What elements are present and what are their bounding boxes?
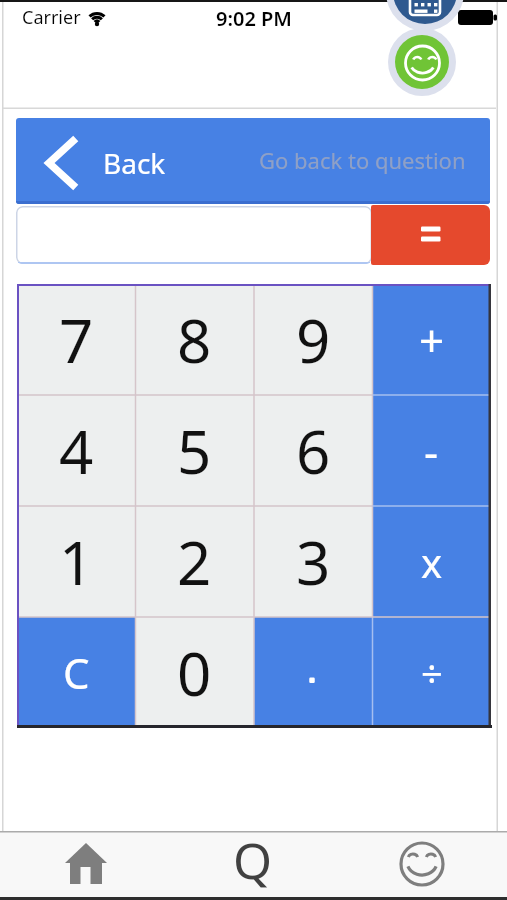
- button[interactable]: C: [17, 617, 136, 728]
- button[interactable]: [16, 206, 372, 264]
- staticText: 4: [59, 410, 94, 492]
- button[interactable]: 0: [135, 617, 254, 728]
- button[interactable]: 1: [17, 506, 136, 617]
- staticText: 8: [177, 299, 212, 381]
- staticText: 9:02 PM: [216, 5, 292, 31]
- staticText: 7: [59, 299, 94, 381]
- button[interactable]: ÷: [372, 617, 491, 728]
- button[interactable]: 9: [254, 284, 373, 395]
- staticText: 9: [296, 299, 331, 381]
- staticText: 3: [296, 521, 331, 603]
- button[interactable]: [388, 28, 456, 96]
- button[interactable]: [254, 617, 373, 728]
- staticText: 0: [177, 632, 212, 714]
- button[interactable]: 6: [254, 395, 373, 506]
- button[interactable]: 5: [135, 395, 254, 506]
- button[interactable]: 8: [135, 284, 254, 395]
- button[interactable]: 2: [135, 506, 254, 617]
- button[interactable]: [386, 0, 464, 31]
- staticText: x: [421, 535, 443, 589]
- button[interactable]: [371, 205, 490, 265]
- staticText: 5: [177, 410, 212, 492]
- button[interactable]: [387, 836, 457, 892]
- button[interactable]: [51, 836, 121, 892]
- staticText: Back: [103, 144, 166, 182]
- button[interactable]: 4: [17, 395, 136, 506]
- staticText: +: [419, 310, 445, 370]
- button[interactable]: -: [372, 395, 491, 506]
- button[interactable]: Q: [218, 826, 288, 888]
- staticText: C: [63, 644, 90, 701]
- staticText: 2: [177, 521, 212, 603]
- button[interactable]: +: [372, 284, 491, 395]
- staticText: Carrier: [22, 5, 81, 30]
- staticText: ÷: [421, 647, 443, 699]
- staticText: -: [424, 421, 439, 481]
- staticText: Go back to question: [259, 145, 466, 175]
- button[interactable]: 3: [254, 506, 373, 617]
- staticText: 1: [59, 521, 94, 603]
- button[interactable]: 7: [17, 284, 136, 395]
- staticText: Q: [233, 826, 273, 888]
- button[interactable]: Back: [16, 118, 490, 204]
- button[interactable]: x: [372, 506, 491, 617]
- staticText: 6: [296, 410, 331, 492]
